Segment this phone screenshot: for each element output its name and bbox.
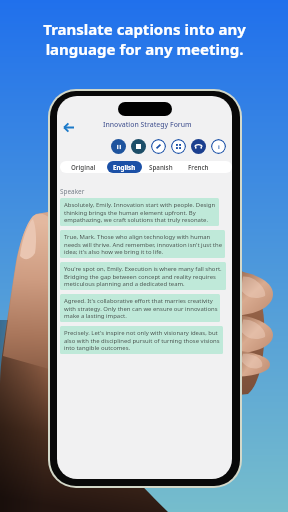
staticText: True, Mark. Those who align technology w… — [64, 233, 223, 255]
staticText: Spanish — [149, 163, 173, 171]
button[interactable]: Spanish — [149, 161, 173, 173]
staticText: Original — [71, 163, 96, 171]
button[interactable]: Pause — [111, 139, 126, 154]
staticText: Translate captions into any language for… — [43, 19, 246, 59]
button[interactable]: Apps — [171, 139, 186, 154]
button[interactable]: True, Mark. Those who align technology w… — [60, 230, 225, 258]
button[interactable]: French — [188, 161, 209, 173]
staticText: Speaker — [60, 187, 85, 196]
staticText: You're spot on, Emily. Execution is wher… — [64, 265, 224, 287]
button[interactable]: English — [107, 161, 142, 173]
button[interactable]: You're spot on, Emily. Execution is wher… — [60, 262, 226, 290]
button[interactable]: Audio — [191, 139, 206, 154]
staticText: English — [113, 163, 136, 171]
button[interactable]: Info — [211, 139, 226, 154]
staticText: i — [218, 143, 220, 151]
staticText: Precisely. Let's inspire not only with v… — [64, 329, 221, 351]
button[interactable]: Original — [71, 161, 96, 173]
button[interactable]: Absolutely, Emily. Innovation start with… — [60, 198, 219, 226]
staticText: Agreed. It's collaborative effort that m… — [64, 297, 218, 319]
button[interactable]: Precisely. Let's inspire not only with v… — [60, 326, 223, 354]
button[interactable]: Stop — [131, 139, 146, 154]
staticText: Absolutely, Emily. Innovation start with… — [64, 201, 217, 223]
staticText: Innovation Strategy Forum — [103, 120, 192, 129]
button[interactable]: Edit — [151, 139, 166, 154]
button[interactable]: Agreed. It's collaborative effort that m… — [60, 294, 220, 322]
staticText: French — [188, 163, 209, 171]
button[interactable]: Back — [60, 119, 76, 135]
